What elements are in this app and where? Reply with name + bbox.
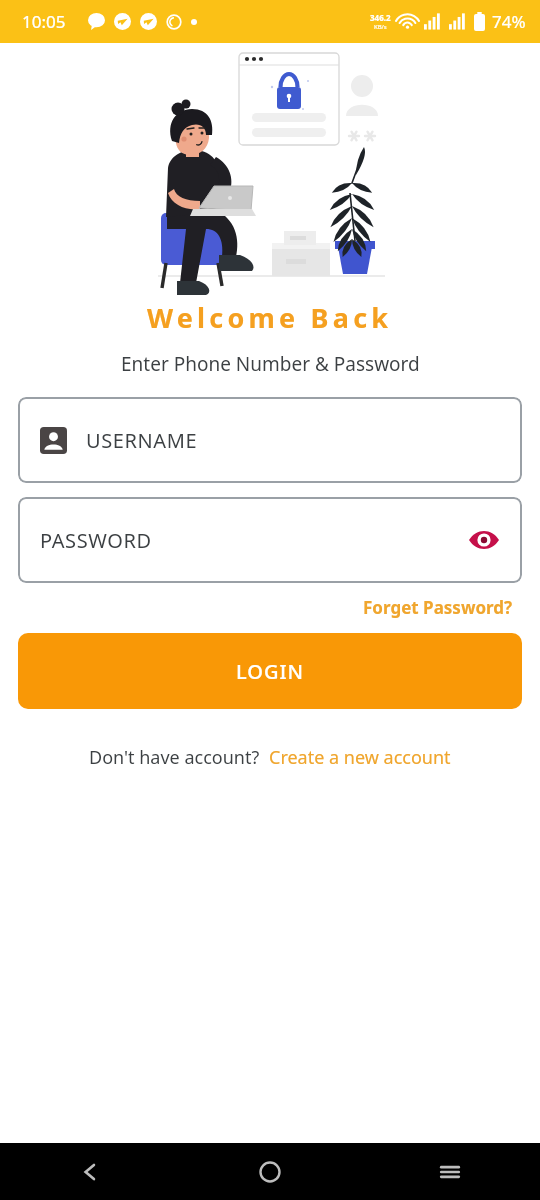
staticText: USERNAME (86, 427, 198, 454)
staticText: Welcome Back (147, 299, 393, 336)
button[interactable]: Back (0, 1143, 180, 1200)
button[interactable]: USERNAME (18, 397, 522, 483)
staticText: Forget Password? (363, 596, 513, 619)
staticText: LOGIN (236, 658, 305, 685)
staticText: Don't have account? (89, 745, 260, 770)
button[interactable]: Show password (464, 520, 504, 560)
staticText: Create a new account (269, 745, 451, 770)
staticText: KB/s (374, 23, 387, 31)
staticText: 346.2 (370, 12, 391, 23)
staticText: Enter Phone Number & Password (121, 351, 420, 377)
button[interactable]: Home (180, 1143, 360, 1200)
button[interactable]: Create a new account (269, 745, 451, 770)
staticText: PASSWORD (40, 527, 152, 554)
staticText: 10:05 (22, 10, 66, 33)
button[interactable]: Recent apps (360, 1143, 540, 1200)
staticText: 74% (492, 10, 526, 33)
button[interactable]: LOGIN (18, 633, 522, 709)
button[interactable]: Forget Password? (360, 593, 516, 622)
button[interactable]: PASSWORD (18, 497, 522, 583)
